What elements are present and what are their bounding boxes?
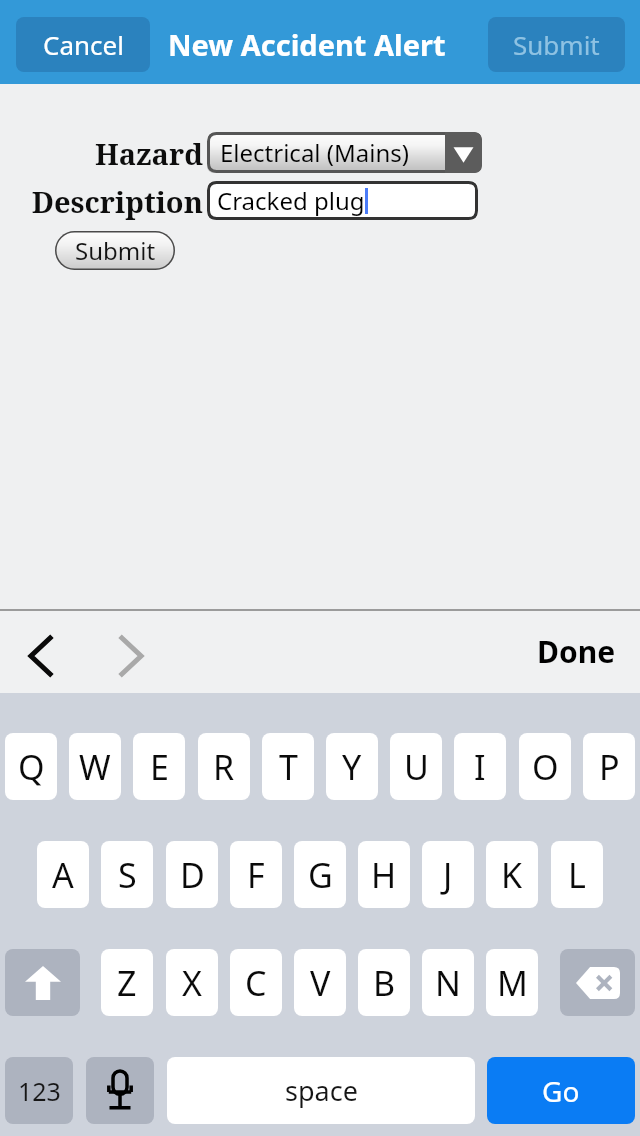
button[interactable]: C bbox=[230, 949, 282, 1016]
staticText: W bbox=[79, 744, 111, 790]
button[interactable]: Next field bbox=[98, 623, 164, 689]
staticText: Description bbox=[31, 182, 203, 221]
staticText: Cancel bbox=[43, 27, 124, 62]
staticText: G bbox=[308, 852, 333, 898]
button[interactable]: D bbox=[166, 841, 218, 908]
staticText: O bbox=[532, 744, 559, 790]
staticText: Q bbox=[18, 744, 45, 790]
button[interactable]: Shift bbox=[5, 949, 80, 1016]
button[interactable]: Delete bbox=[560, 949, 635, 1016]
button[interactable]: space bbox=[167, 1057, 475, 1124]
button[interactable]: W bbox=[69, 733, 121, 800]
button[interactable]: Z bbox=[101, 949, 153, 1016]
button[interactable]: V bbox=[294, 949, 346, 1016]
button[interactable]: R bbox=[198, 733, 250, 800]
staticText: L bbox=[568, 852, 586, 898]
button[interactable]: J bbox=[422, 841, 474, 908]
staticText: D bbox=[180, 852, 205, 898]
button[interactable]: S bbox=[101, 841, 153, 908]
button[interactable]: U bbox=[390, 733, 442, 800]
button[interactable]: A bbox=[37, 841, 89, 908]
button[interactable]: Done bbox=[527, 619, 626, 684]
staticText: H bbox=[371, 852, 397, 898]
button[interactable]: B bbox=[358, 949, 410, 1016]
button[interactable]: M bbox=[486, 949, 538, 1016]
staticText: T bbox=[279, 744, 298, 790]
staticText: U bbox=[404, 744, 429, 790]
staticText: space bbox=[285, 1072, 358, 1109]
staticText: New Accident Alert bbox=[168, 25, 446, 64]
staticText: X bbox=[182, 960, 202, 1006]
staticText: Y bbox=[342, 744, 362, 790]
staticText: J bbox=[443, 852, 453, 898]
staticText: 123 bbox=[18, 1074, 61, 1108]
staticText: C bbox=[245, 960, 267, 1006]
button[interactable]: X bbox=[166, 949, 218, 1016]
button[interactable]: Submit bbox=[488, 17, 625, 72]
button[interactable]: G bbox=[294, 841, 346, 908]
staticText: N bbox=[435, 960, 461, 1006]
staticText: Submit bbox=[75, 234, 156, 267]
button[interactable]: P bbox=[583, 733, 635, 800]
staticText: Done bbox=[537, 631, 616, 672]
button[interactable]: E bbox=[133, 733, 185, 800]
staticText: Cracked plug bbox=[217, 184, 365, 217]
button[interactable]: Dictate bbox=[86, 1057, 154, 1124]
staticText: A bbox=[52, 852, 74, 898]
button[interactable]: H bbox=[358, 841, 410, 908]
staticText: S bbox=[118, 852, 137, 898]
staticText: K bbox=[501, 852, 523, 898]
staticText: Electrical (Mains) bbox=[220, 136, 409, 169]
staticText: Submit bbox=[513, 27, 600, 62]
staticText: P bbox=[599, 744, 620, 790]
button[interactable]: Cracked plug bbox=[207, 181, 478, 220]
button[interactable]: L bbox=[551, 841, 603, 908]
button[interactable]: Numbers bbox=[5, 1057, 73, 1124]
button[interactable]: Electrical (Mains) bbox=[207, 132, 482, 173]
staticText: M bbox=[497, 960, 528, 1006]
button[interactable]: Go bbox=[487, 1057, 635, 1124]
button[interactable]: F bbox=[230, 841, 282, 908]
staticText: B bbox=[373, 960, 396, 1006]
button[interactable]: Y bbox=[326, 733, 378, 800]
button[interactable]: K bbox=[486, 841, 538, 908]
staticText: Hazard bbox=[95, 134, 203, 173]
button[interactable]: Cancel bbox=[16, 17, 150, 72]
button[interactable]: O bbox=[519, 733, 571, 800]
staticText: E bbox=[150, 744, 169, 790]
staticText: F bbox=[247, 852, 265, 898]
staticText: R bbox=[213, 744, 235, 790]
staticText: Go bbox=[542, 1072, 580, 1110]
staticText: V bbox=[310, 960, 331, 1006]
button[interactable]: Previous field bbox=[8, 623, 74, 689]
button[interactable]: I bbox=[454, 733, 506, 800]
staticText: Z bbox=[117, 960, 137, 1006]
staticText: I bbox=[474, 744, 486, 790]
button[interactable]: T bbox=[262, 733, 314, 800]
button[interactable]: Submit bbox=[55, 231, 175, 270]
button[interactable]: Q bbox=[5, 733, 57, 800]
button[interactable]: N bbox=[422, 949, 474, 1016]
